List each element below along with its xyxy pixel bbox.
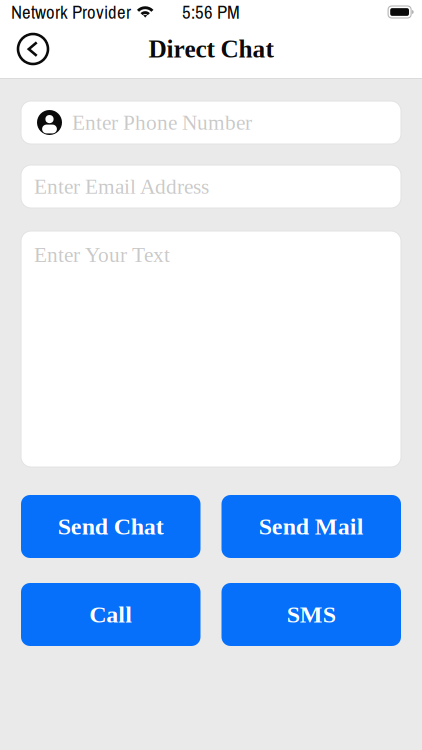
staticText: Enter Phone Number <box>72 111 252 134</box>
button[interactable]: Back <box>11 27 55 71</box>
staticText: Call <box>89 601 132 628</box>
button[interactable]: Call <box>21 583 200 646</box>
staticText: Send Mail <box>259 513 364 540</box>
staticText: Send Chat <box>58 513 164 540</box>
button[interactable]: Send Mail <box>221 495 401 558</box>
staticText: SMS <box>287 601 336 628</box>
staticText: Direct Chat <box>148 35 273 63</box>
button[interactable]: Enter Your Text <box>21 231 401 467</box>
button[interactable]: Enter Phone Number <box>21 101 401 144</box>
staticText: Enter Email Address <box>34 175 209 198</box>
staticText: Enter Your Text <box>34 243 170 267</box>
staticText: Network Provider <box>11 0 131 24</box>
staticText: 5:56 PM <box>182 0 240 24</box>
button[interactable]: Enter Email Address <box>21 165 401 208</box>
button[interactable]: Send Chat <box>21 495 200 558</box>
button[interactable]: SMS <box>221 583 401 646</box>
